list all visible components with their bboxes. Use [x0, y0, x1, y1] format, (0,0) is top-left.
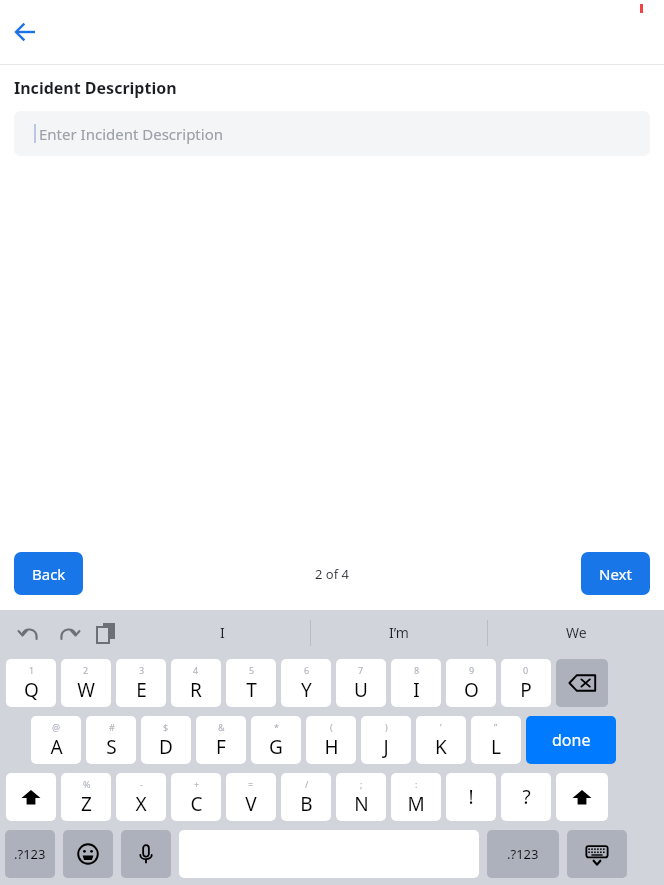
staticText: K: [435, 734, 447, 760]
button[interactable]: 3: [116, 659, 166, 707]
staticText: ’: [440, 721, 442, 733]
button[interactable]: Enter Incident Description: [14, 111, 650, 156]
button[interactable]: !: [446, 773, 496, 821]
staticText: A: [50, 734, 63, 760]
staticText: (: [330, 721, 333, 733]
staticText: 2: [83, 664, 89, 676]
button[interactable]: $: [141, 716, 191, 764]
staticText: Y: [301, 677, 312, 703]
button[interactable]: ?: [501, 773, 551, 821]
button[interactable]: I’m: [311, 610, 487, 655]
button[interactable]: &: [196, 716, 246, 764]
staticText: #: [109, 721, 115, 733]
button[interactable]: Paste: [90, 617, 122, 649]
staticText: X: [135, 791, 147, 817]
staticText: J: [383, 734, 389, 760]
button[interactable]: Voice input: [121, 830, 171, 878]
button[interactable]: -: [116, 773, 166, 821]
button[interactable]: ): [361, 716, 411, 764]
staticText: &: [218, 721, 225, 733]
button[interactable]: ”: [471, 716, 521, 764]
staticText: D: [159, 734, 173, 760]
button[interactable]: 4: [171, 659, 221, 707]
staticText: $: [163, 721, 169, 733]
button[interactable]: ’: [416, 716, 466, 764]
button[interactable]: 6: [281, 659, 331, 707]
button[interactable]: Shift: [6, 773, 56, 821]
button[interactable]: +: [171, 773, 221, 821]
button[interactable]: Undo: [14, 617, 46, 649]
button[interactable]: 5: [226, 659, 276, 707]
staticText: 9: [469, 664, 475, 676]
staticText: 1: [29, 664, 35, 676]
button[interactable]: Shift: [556, 773, 608, 821]
staticText: 2 of 4: [315, 565, 349, 583]
button[interactable]: 8: [391, 659, 441, 707]
button[interactable]: @: [31, 716, 81, 764]
button[interactable]: 7: [336, 659, 386, 707]
button[interactable]: 1: [6, 659, 56, 707]
staticText: 7: [358, 664, 364, 676]
button[interactable]: .?123: [487, 830, 559, 878]
button[interactable]: Redo: [52, 617, 84, 649]
staticText: H: [324, 734, 339, 760]
staticText: 8: [414, 664, 420, 676]
staticText: /: [305, 778, 309, 790]
button[interactable]: %: [61, 773, 111, 821]
staticText: ): [385, 721, 388, 733]
staticText: 4: [193, 664, 199, 676]
button[interactable]: =: [226, 773, 276, 821]
staticText: 6: [304, 664, 310, 676]
staticText: V: [245, 791, 257, 817]
button[interactable]: /: [281, 773, 331, 821]
staticText: P: [520, 677, 532, 703]
button[interactable]: Emoji: [63, 830, 113, 878]
button[interactable]: Back: [14, 552, 83, 595]
staticText: I’m: [389, 623, 409, 642]
button[interactable]: *: [251, 716, 301, 764]
staticText: Back: [32, 564, 66, 584]
button[interactable]: We: [488, 610, 664, 655]
staticText: ?: [522, 784, 531, 810]
staticText: E: [136, 677, 147, 703]
staticText: +: [194, 778, 200, 790]
staticText: We: [566, 623, 587, 642]
staticText: .?123: [507, 845, 539, 863]
staticText: %: [83, 778, 91, 790]
button[interactable]: 0: [501, 659, 551, 707]
staticText: Q: [24, 677, 39, 703]
button[interactable]: #: [86, 716, 136, 764]
staticText: ;: [360, 778, 363, 790]
staticText: =: [248, 778, 254, 790]
staticText: S: [106, 734, 117, 760]
staticText: Z: [81, 791, 92, 817]
staticText: N: [354, 791, 369, 817]
button[interactable]: .?123: [5, 830, 55, 878]
button[interactable]: Next: [581, 552, 650, 595]
staticText: C: [190, 791, 203, 817]
staticText: G: [269, 734, 283, 760]
staticText: Incident Description: [14, 77, 177, 99]
staticText: I: [413, 677, 420, 703]
staticText: F: [216, 734, 226, 760]
button[interactable]: (: [306, 716, 356, 764]
staticText: :: [415, 778, 418, 790]
staticText: 3: [139, 664, 145, 676]
button[interactable]: Backspace: [556, 659, 608, 707]
staticText: 0: [523, 664, 529, 676]
button[interactable]: ;: [336, 773, 386, 821]
staticText: L: [491, 734, 501, 760]
button[interactable]: Hide keyboard: [567, 830, 627, 878]
staticText: done: [552, 729, 591, 751]
button[interactable]: :: [391, 773, 441, 821]
button[interactable]: done: [526, 716, 616, 764]
staticText: .?123: [14, 845, 46, 863]
button[interactable]: 2: [61, 659, 111, 707]
button[interactable]: I: [135, 610, 310, 655]
staticText: M: [407, 791, 425, 817]
staticText: B: [300, 791, 313, 817]
staticText: W: [77, 677, 95, 703]
button[interactable]: Back: [8, 14, 44, 50]
button[interactable]: 9: [446, 659, 496, 707]
